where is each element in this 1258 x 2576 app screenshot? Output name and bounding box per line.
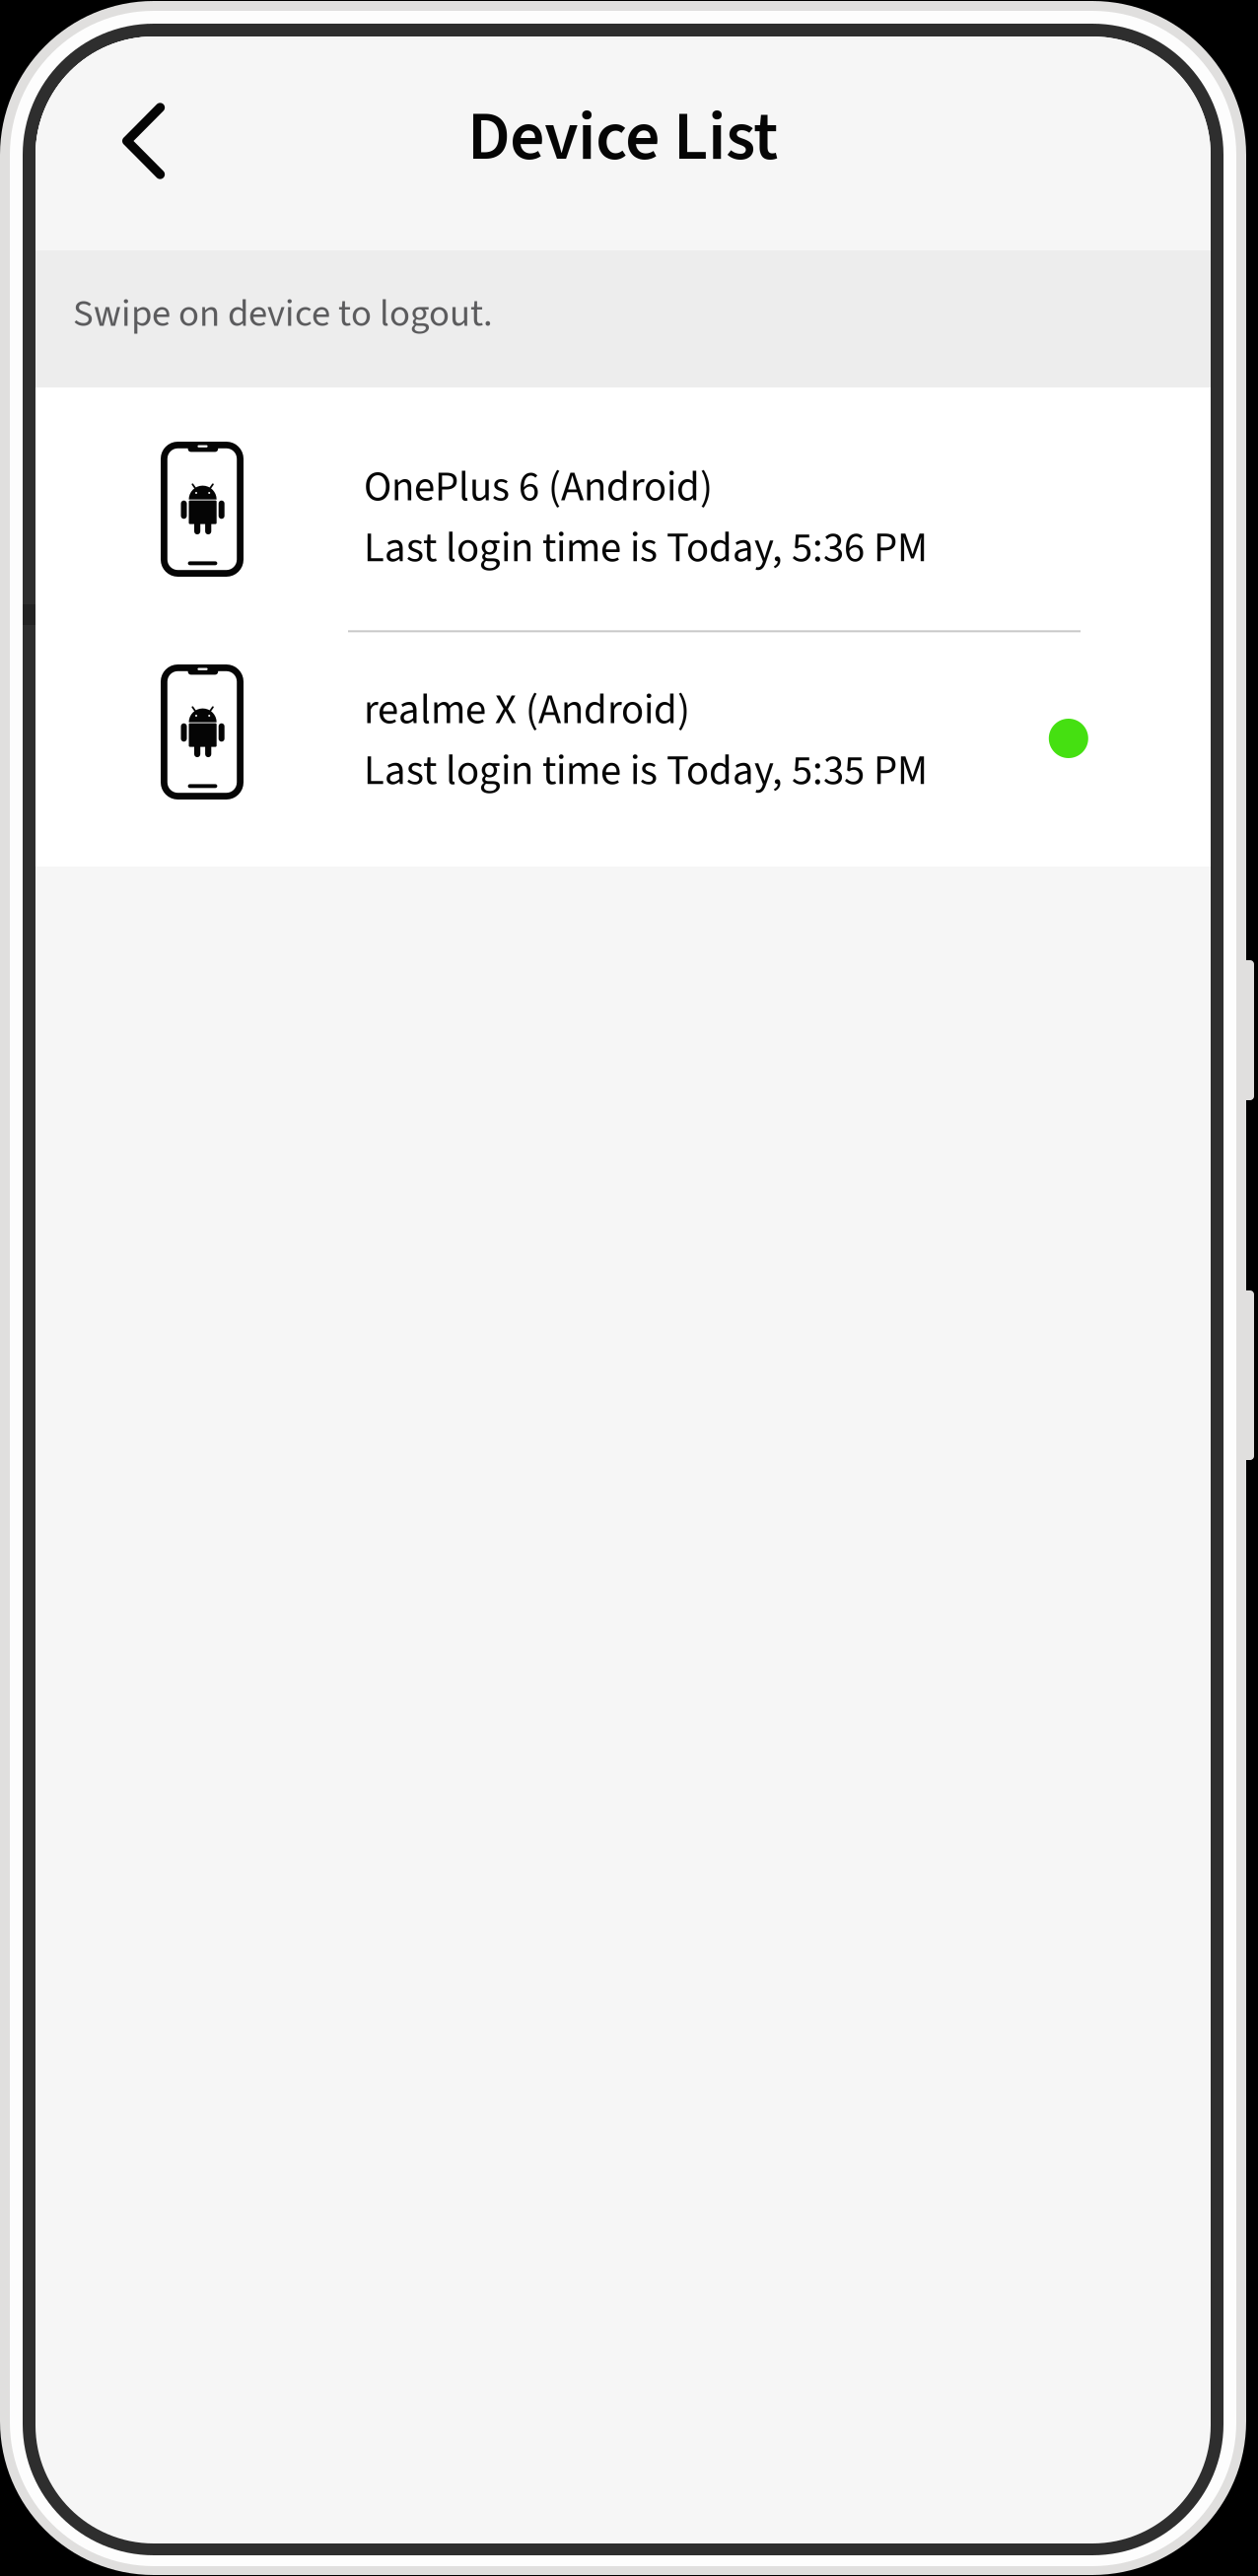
staticText: Device List [468, 89, 778, 186]
staticText: realme X (Android) [364, 680, 690, 740]
staticText: Swipe on device to logout. [73, 287, 493, 341]
button[interactable]: realme X (Android) [35, 620, 1211, 843]
staticText: Last login time is Today, 5:35 PM [364, 741, 928, 801]
button[interactable]: OnePlus 6 (Android) [35, 397, 1211, 620]
staticText: Last login time is Today, 5:36 PM [364, 518, 928, 578]
button[interactable]: Back [35, 36, 209, 250]
staticText: OnePlus 6 (Android) [364, 457, 713, 517]
